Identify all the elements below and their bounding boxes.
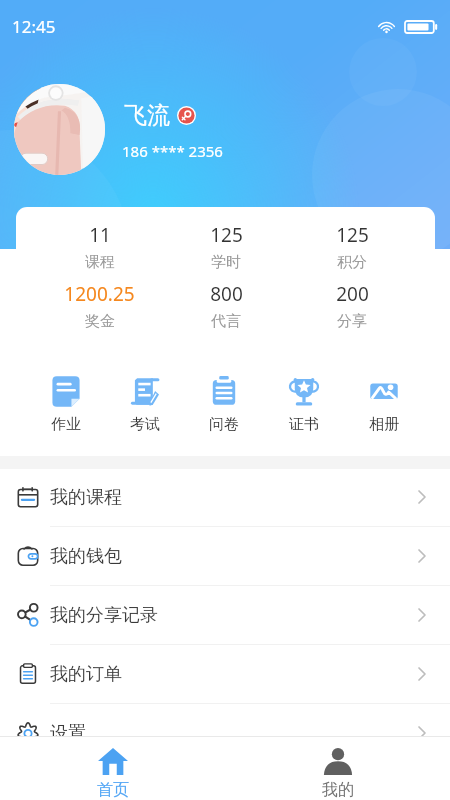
button[interactable]: 考试 bbox=[105, 376, 184, 434]
staticText: 奖金 bbox=[85, 312, 115, 331]
staticText: 800 bbox=[210, 281, 243, 307]
button[interactable]: 相册 bbox=[344, 376, 424, 434]
button[interactable]: 125 bbox=[163, 222, 289, 272]
staticText: 问卷 bbox=[209, 415, 239, 434]
button[interactable]: Profile photo bbox=[14, 84, 105, 175]
staticText: 12:45 bbox=[12, 15, 56, 38]
button[interactable]: 证书 bbox=[264, 376, 344, 434]
button[interactable]: 125 bbox=[289, 222, 415, 272]
staticText: 我的分享记录 bbox=[50, 604, 158, 627]
button[interactable]: 设置 bbox=[0, 704, 450, 762]
button[interactable]: 我的课程 bbox=[0, 468, 450, 526]
button[interactable]: 1200.25 bbox=[36, 281, 163, 331]
staticText: 分享 bbox=[337, 312, 367, 331]
staticText: 11 bbox=[89, 222, 111, 248]
staticText: 我的课程 bbox=[50, 486, 122, 509]
staticText: 设置 bbox=[50, 722, 86, 745]
staticText: 考试 bbox=[130, 415, 160, 434]
staticText: 课程 bbox=[85, 253, 115, 272]
button[interactable]: 作业 bbox=[26, 376, 105, 434]
staticText: 1200.25 bbox=[64, 281, 135, 307]
button[interactable]: 11 bbox=[36, 222, 163, 272]
button[interactable]: 我的 bbox=[225, 737, 450, 800]
staticText: 我的订单 bbox=[50, 663, 122, 686]
staticText: 证书 bbox=[289, 415, 319, 434]
button[interactable]: 首页 bbox=[0, 737, 225, 800]
staticText: 代言 bbox=[211, 312, 241, 331]
staticText: 125 bbox=[210, 222, 243, 248]
staticText: 相册 bbox=[369, 415, 399, 434]
staticText: 200 bbox=[336, 281, 369, 307]
button[interactable]: 800 bbox=[163, 281, 289, 331]
staticText: 飞流 bbox=[124, 101, 170, 130]
staticText: 186 **** 2356 bbox=[122, 141, 223, 161]
button[interactable]: 我的分享记录 bbox=[0, 586, 450, 644]
button[interactable]: 200 bbox=[289, 281, 415, 331]
staticText: 首页 bbox=[97, 780, 129, 800]
button[interactable]: 问卷 bbox=[184, 376, 264, 434]
staticText: 我的钱包 bbox=[50, 545, 122, 568]
staticText: 作业 bbox=[51, 415, 81, 434]
button[interactable]: 我的钱包 bbox=[0, 527, 450, 585]
staticText: 125 bbox=[336, 222, 369, 248]
button[interactable]: 我的订单 bbox=[0, 645, 450, 703]
staticText: 我的 bbox=[322, 780, 354, 800]
staticText: 积分 bbox=[337, 253, 367, 272]
staticText: 学时 bbox=[211, 253, 241, 272]
